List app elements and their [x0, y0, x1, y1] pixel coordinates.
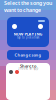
staticText: Share to [20, 63, 36, 69]
button[interactable]: Change song [7, 50, 49, 60]
staticText: Change song [14, 52, 41, 58]
staticText: Choose an app [17, 67, 38, 70]
staticText: tap to pick a track [17, 36, 39, 39]
button[interactable]: Settings [9, 70, 13, 74]
staticText: NOW PLAYING [13, 31, 42, 37]
staticText: Select the song you want to change [4, 0, 52, 14]
button[interactable]: Music [15, 70, 19, 74]
